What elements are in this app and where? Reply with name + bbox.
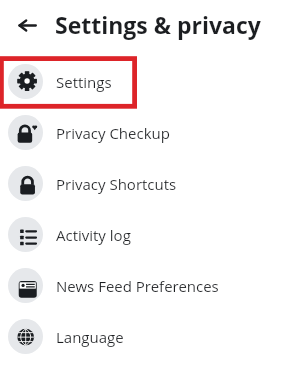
button[interactable]: Language — [0, 311, 297, 362]
staticText: Privacy Checkup — [56, 123, 170, 143]
staticText: Activity log — [56, 225, 131, 245]
staticText: Privacy Shortcuts — [56, 174, 177, 194]
button[interactable]: Privacy Checkup — [0, 107, 297, 158]
staticText: Settings & privacy — [55, 9, 261, 40]
button[interactable]: Activity log — [0, 209, 297, 260]
button[interactable]: News Feed Preferences — [0, 260, 297, 311]
staticText: Settings — [56, 72, 112, 92]
button[interactable]: Settings — [0, 56, 297, 107]
staticText: News Feed Preferences — [56, 276, 219, 296]
button[interactable]: Privacy Shortcuts — [0, 158, 297, 209]
button[interactable]: Back — [9, 7, 45, 43]
staticText: Language — [56, 327, 124, 347]
